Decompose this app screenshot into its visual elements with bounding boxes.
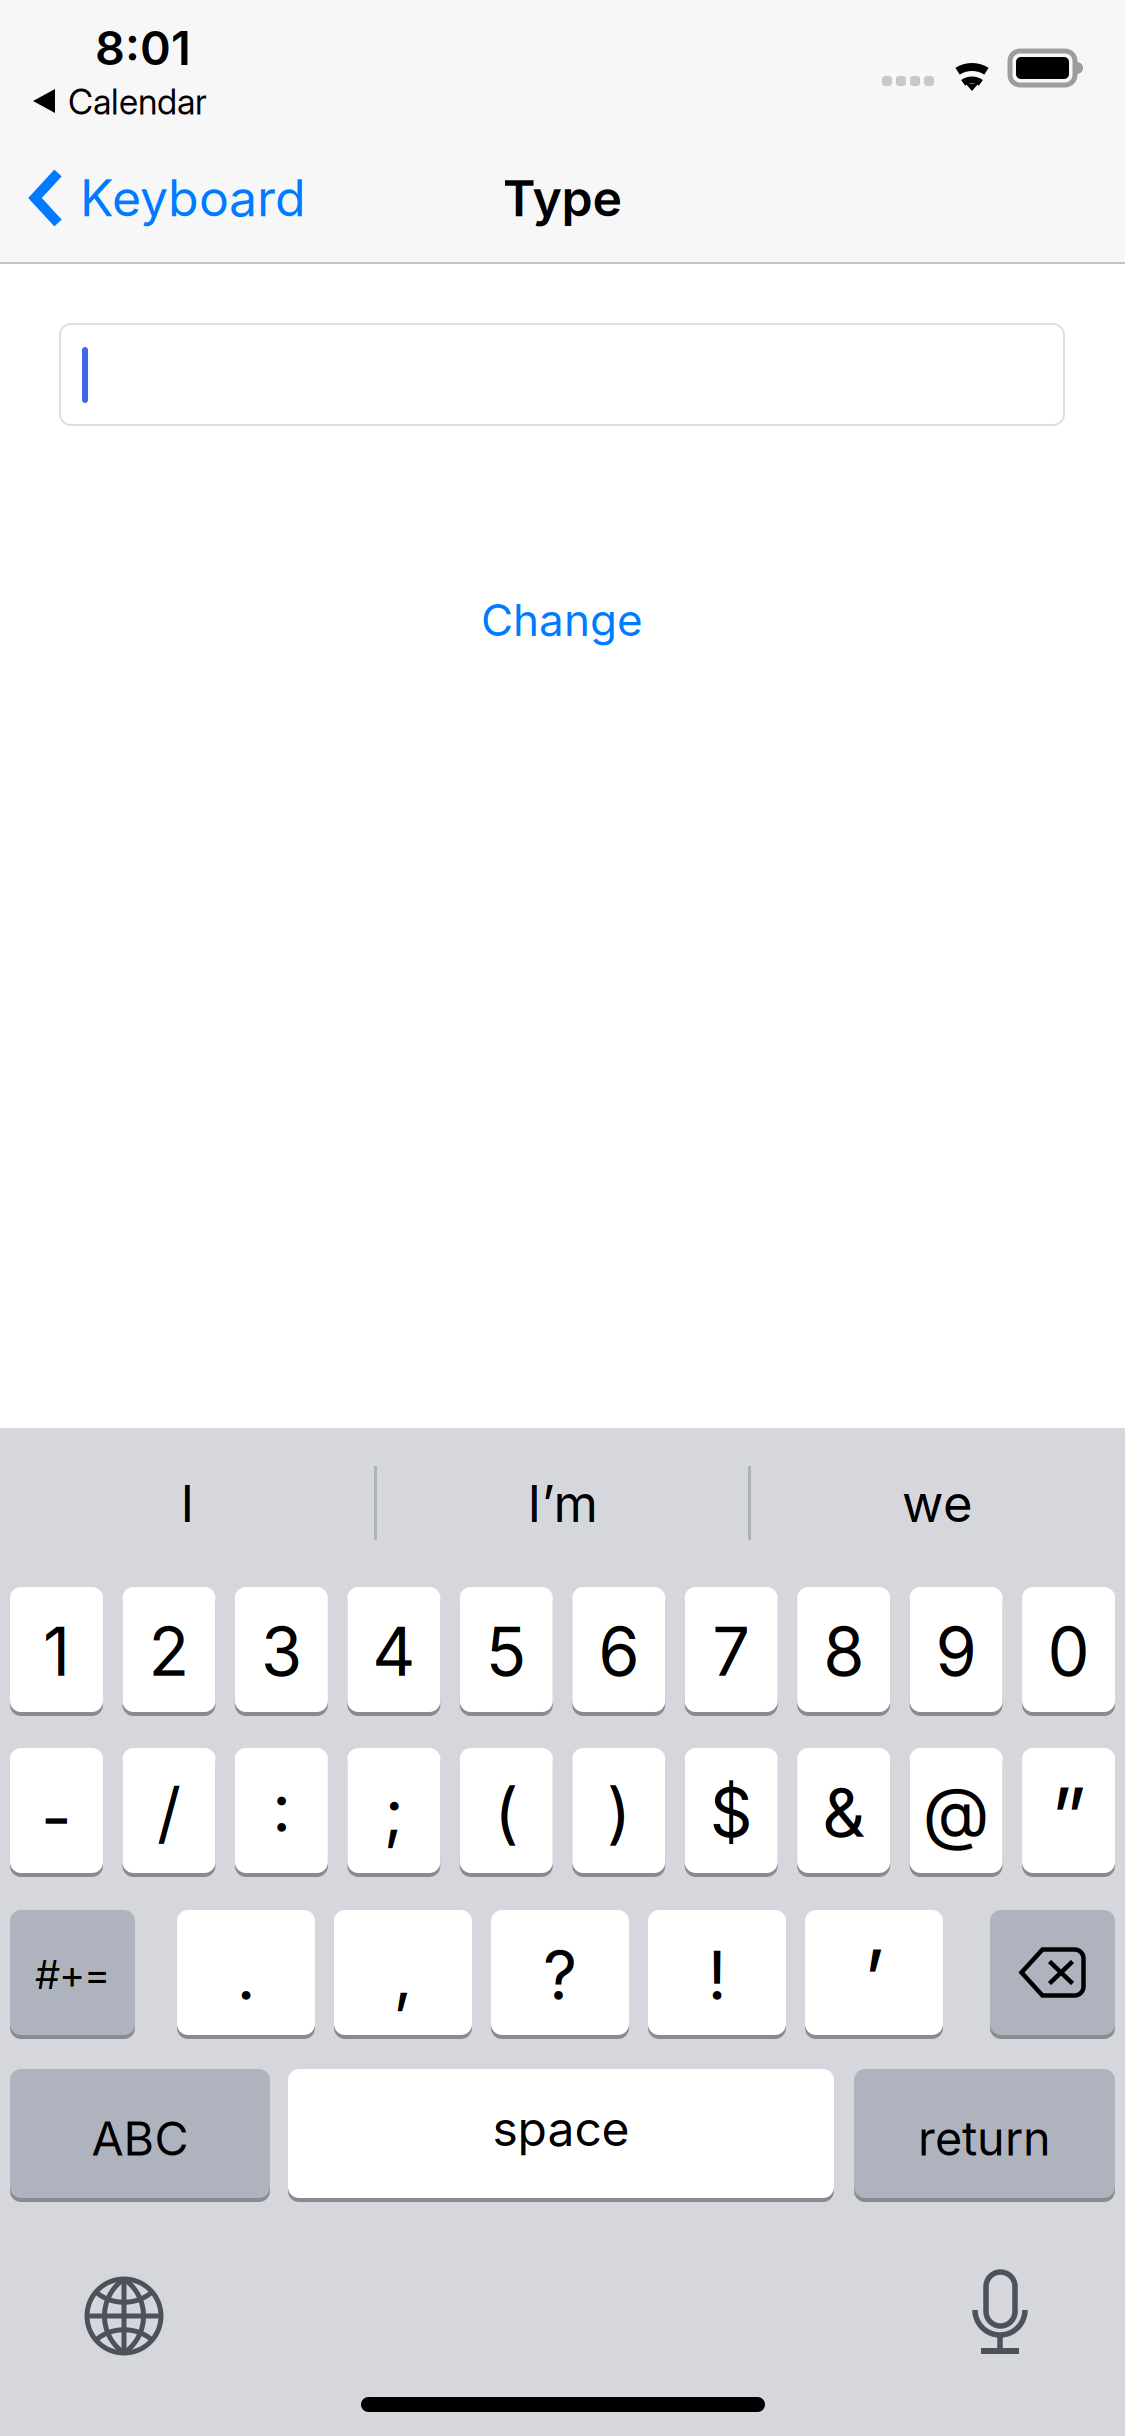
button[interactable]: ’	[805, 1910, 943, 2039]
staticText: ,	[393, 1935, 412, 2016]
staticText: we	[902, 1473, 973, 1534]
staticText: !	[707, 1935, 726, 2016]
button[interactable]: 6	[572, 1587, 665, 1716]
button[interactable]: 8	[797, 1587, 890, 1716]
staticText: )	[607, 1772, 631, 1853]
button[interactable]: Next keyboard	[84, 2276, 164, 2356]
button[interactable]: 1	[10, 1587, 103, 1716]
staticText: #+=	[35, 1950, 109, 1999]
button[interactable]: 5	[460, 1587, 553, 1716]
staticText: 5	[486, 1611, 527, 1692]
staticText: 2	[148, 1611, 189, 1692]
staticText: @	[923, 1771, 990, 1854]
button[interactable]: ;	[347, 1748, 440, 1877]
staticText: .	[236, 1935, 255, 2016]
button[interactable]: $	[685, 1748, 778, 1877]
button[interactable]: ,	[334, 1910, 472, 2039]
button[interactable]: -	[10, 1748, 103, 1877]
staticText: return	[918, 2110, 1051, 2167]
staticText: ’	[863, 1930, 884, 2027]
button[interactable]: Delete	[990, 1910, 1115, 2039]
button[interactable]: @	[910, 1748, 1003, 1877]
staticText: ”	[1051, 1768, 1086, 1865]
button[interactable]: ?	[491, 1910, 629, 2039]
staticText: &	[822, 1772, 865, 1853]
button[interactable]: Keyboard	[29, 138, 329, 258]
staticText: Keyboard	[80, 168, 306, 228]
staticText: Calendar	[68, 81, 207, 123]
button[interactable]: 0	[1022, 1587, 1115, 1716]
button[interactable]: Dictation	[972, 2271, 1028, 2355]
staticText: I’m	[527, 1473, 597, 1534]
button[interactable]: ABC	[10, 2069, 270, 2202]
button[interactable]: I	[0, 1428, 375, 1587]
staticText: 0	[1048, 1611, 1090, 1692]
button[interactable]: Change	[412, 574, 712, 666]
staticText: I	[180, 1473, 194, 1534]
button[interactable]: 7	[685, 1587, 778, 1716]
button[interactable]: (	[460, 1748, 553, 1877]
staticText: ABC	[91, 2110, 188, 2167]
staticText: $	[710, 1772, 753, 1853]
button[interactable]: :	[235, 1748, 328, 1877]
staticText: 8:01	[95, 20, 191, 76]
button[interactable]: !	[648, 1910, 786, 2039]
staticText: 1	[43, 1611, 70, 1692]
staticText: -	[41, 1777, 72, 1858]
button[interactable]: 9	[910, 1587, 1003, 1716]
button[interactable]: space	[288, 2069, 834, 2202]
staticText: Change	[481, 593, 643, 647]
staticText: ?	[543, 1935, 577, 2016]
button[interactable]: &	[797, 1748, 890, 1877]
button[interactable]: 2	[122, 1587, 215, 1716]
staticText: 6	[598, 1611, 639, 1692]
button[interactable]: 4	[347, 1587, 440, 1716]
staticText: 7	[712, 1611, 750, 1692]
button[interactable]: .	[177, 1910, 315, 2039]
staticText: ;	[384, 1772, 404, 1853]
button[interactable]: 3	[235, 1587, 328, 1716]
staticText: :	[272, 1767, 291, 1848]
staticText: (	[494, 1772, 518, 1853]
staticText: 8	[823, 1611, 864, 1692]
staticText: 4	[372, 1611, 415, 1692]
button[interactable]: we	[750, 1428, 1125, 1587]
button[interactable]: I’m	[375, 1428, 750, 1587]
button[interactable]: return	[854, 2069, 1115, 2202]
staticText: /	[157, 1772, 181, 1853]
staticText: 3	[261, 1611, 302, 1692]
button[interactable]: ”	[1022, 1748, 1115, 1877]
button[interactable]: #+=	[10, 1910, 135, 2039]
staticText: space	[492, 2099, 629, 2158]
button[interactable]: /	[122, 1748, 215, 1877]
button[interactable]: )	[572, 1748, 665, 1877]
staticText: 9	[936, 1611, 977, 1692]
staticText: Type	[502, 168, 622, 228]
